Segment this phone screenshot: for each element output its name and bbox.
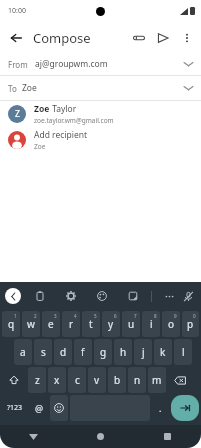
staticText: 8 (154, 313, 157, 319)
button[interactable]: Settings (63, 288, 79, 304)
button[interactable]: p (182, 311, 199, 337)
staticText: w (27, 317, 35, 331)
staticText: t (89, 317, 93, 331)
staticText: 1 (14, 313, 17, 319)
staticText: Compose (33, 29, 91, 47)
staticText: Zoe (22, 82, 37, 94)
button[interactable]: s (34, 339, 52, 365)
staticText: m (152, 373, 162, 387)
staticText: r (69, 317, 74, 331)
button[interactable]: Collapse toolbar (5, 288, 21, 304)
button[interactable]: m (148, 367, 166, 393)
staticText: zoe.taylor.wm@gmail.com (34, 116, 114, 125)
button[interactable]: Add recipient (0, 127, 201, 153)
button[interactable]: c (68, 367, 86, 393)
staticText: y (108, 317, 114, 331)
staticText: Add recipient (34, 129, 88, 141)
staticText: 3 (54, 313, 57, 319)
staticText: k (160, 345, 166, 359)
button[interactable]: b (108, 367, 126, 393)
staticText: p (187, 317, 194, 331)
button[interactable]: Z (0, 101, 201, 127)
staticText: e (48, 317, 54, 331)
button[interactable]: Themes (94, 288, 110, 304)
button[interactable]: To (0, 76, 201, 100)
button[interactable]: Shift (2, 367, 26, 393)
button[interactable]: t (82, 311, 100, 337)
button[interactable]: Back (3, 25, 29, 51)
staticText: q (8, 317, 15, 331)
button[interactable]: y (102, 311, 120, 337)
staticText: 5 (94, 313, 97, 319)
staticText: u (128, 317, 135, 331)
button[interactable]: v (88, 367, 106, 393)
button[interactable]: d (54, 339, 72, 365)
button[interactable]: e (42, 311, 60, 337)
button[interactable]: a (14, 339, 32, 365)
button[interactable]: . (152, 395, 169, 421)
button[interactable]: Hide keyboard (0, 425, 67, 448)
staticText: aj@groupwm.com (35, 58, 108, 70)
staticText: . (159, 402, 162, 414)
staticText: a (20, 345, 26, 359)
staticText: 4 (74, 313, 77, 319)
button[interactable]: Voice input off (180, 288, 196, 304)
button[interactable]: z (28, 367, 46, 393)
staticText: h (120, 345, 127, 359)
staticText: 10:00 (8, 6, 26, 16)
staticText: g (100, 345, 107, 359)
staticText: b (114, 373, 121, 387)
button[interactable]: Home (67, 425, 134, 448)
button[interactable]: Send (151, 26, 175, 50)
staticText: n (134, 373, 141, 387)
button[interactable]: k (154, 339, 172, 365)
staticText: From (8, 59, 28, 70)
button[interactable]: @ (30, 395, 48, 421)
button[interactable]: More (161, 288, 177, 304)
button[interactable]: n (128, 367, 146, 393)
button[interactable]: Backspace (168, 367, 192, 393)
button[interactable]: g (94, 339, 112, 365)
staticText: f (81, 345, 85, 359)
staticText: ?123 (7, 403, 23, 413)
staticText: 0 (193, 313, 196, 319)
button[interactable]: u (122, 311, 140, 337)
staticText: x (54, 373, 60, 387)
staticText: 9 (174, 313, 177, 319)
staticText: c (75, 373, 80, 387)
staticText: Z (15, 108, 20, 120)
staticText: d (60, 345, 67, 359)
button[interactable]: Next (171, 395, 199, 421)
button[interactable]: f (74, 339, 92, 365)
staticText: i (150, 317, 153, 331)
button[interactable]: Stickers (125, 288, 141, 304)
button[interactable]: More options (175, 26, 199, 50)
staticText: Zoe (34, 142, 46, 151)
staticText: s (41, 345, 46, 359)
staticText: 7 (134, 313, 137, 319)
button[interactable]: Emoji (50, 395, 68, 421)
staticText: l (182, 345, 185, 359)
staticText: o (168, 317, 175, 331)
staticText: 2 (34, 313, 37, 319)
button[interactable]: ?123 (2, 395, 28, 421)
button[interactable]: o (162, 311, 180, 337)
staticText: Taylor (50, 103, 77, 115)
button[interactable]: Clipboard (32, 288, 48, 304)
staticText: Zoe (34, 103, 50, 115)
button[interactable]: r (62, 311, 80, 337)
button[interactable]: h (114, 339, 132, 365)
button[interactable]: l (174, 339, 192, 365)
button[interactable]: w (22, 311, 40, 337)
button[interactable]: i (142, 311, 160, 337)
staticText: @ (35, 402, 44, 414)
button[interactable]: q (2, 311, 20, 337)
button[interactable]: From (0, 53, 201, 75)
button[interactable]: x (48, 367, 66, 393)
button[interactable]: j (134, 339, 152, 365)
button[interactable]: Recent apps (134, 425, 201, 448)
staticText: j (142, 345, 145, 359)
button[interactable]: Attach file (127, 26, 151, 50)
staticText: v (94, 373, 100, 387)
